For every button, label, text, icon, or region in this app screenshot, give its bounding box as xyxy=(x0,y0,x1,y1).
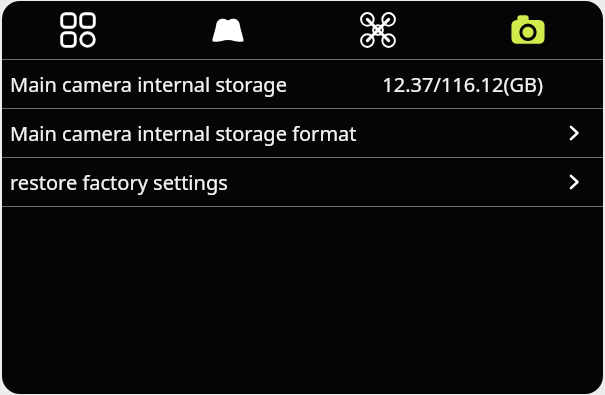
button[interactable]: Main camera internal storage xyxy=(2,60,603,108)
staticText: restore factory settings xyxy=(10,169,228,196)
button[interactable]: Camera xyxy=(453,1,603,59)
staticText: Main camera internal storage xyxy=(10,71,287,98)
button[interactable]: Main camera internal storage format xyxy=(2,109,603,157)
button[interactable]: Drone xyxy=(303,1,453,59)
button[interactable]: restore factory settings xyxy=(2,158,603,206)
staticText: Main camera internal storage format xyxy=(10,120,357,147)
staticText: 12.37/116.12(GB) xyxy=(382,71,543,98)
button[interactable]: Controller xyxy=(153,1,303,59)
button[interactable]: Apps xyxy=(2,1,153,59)
